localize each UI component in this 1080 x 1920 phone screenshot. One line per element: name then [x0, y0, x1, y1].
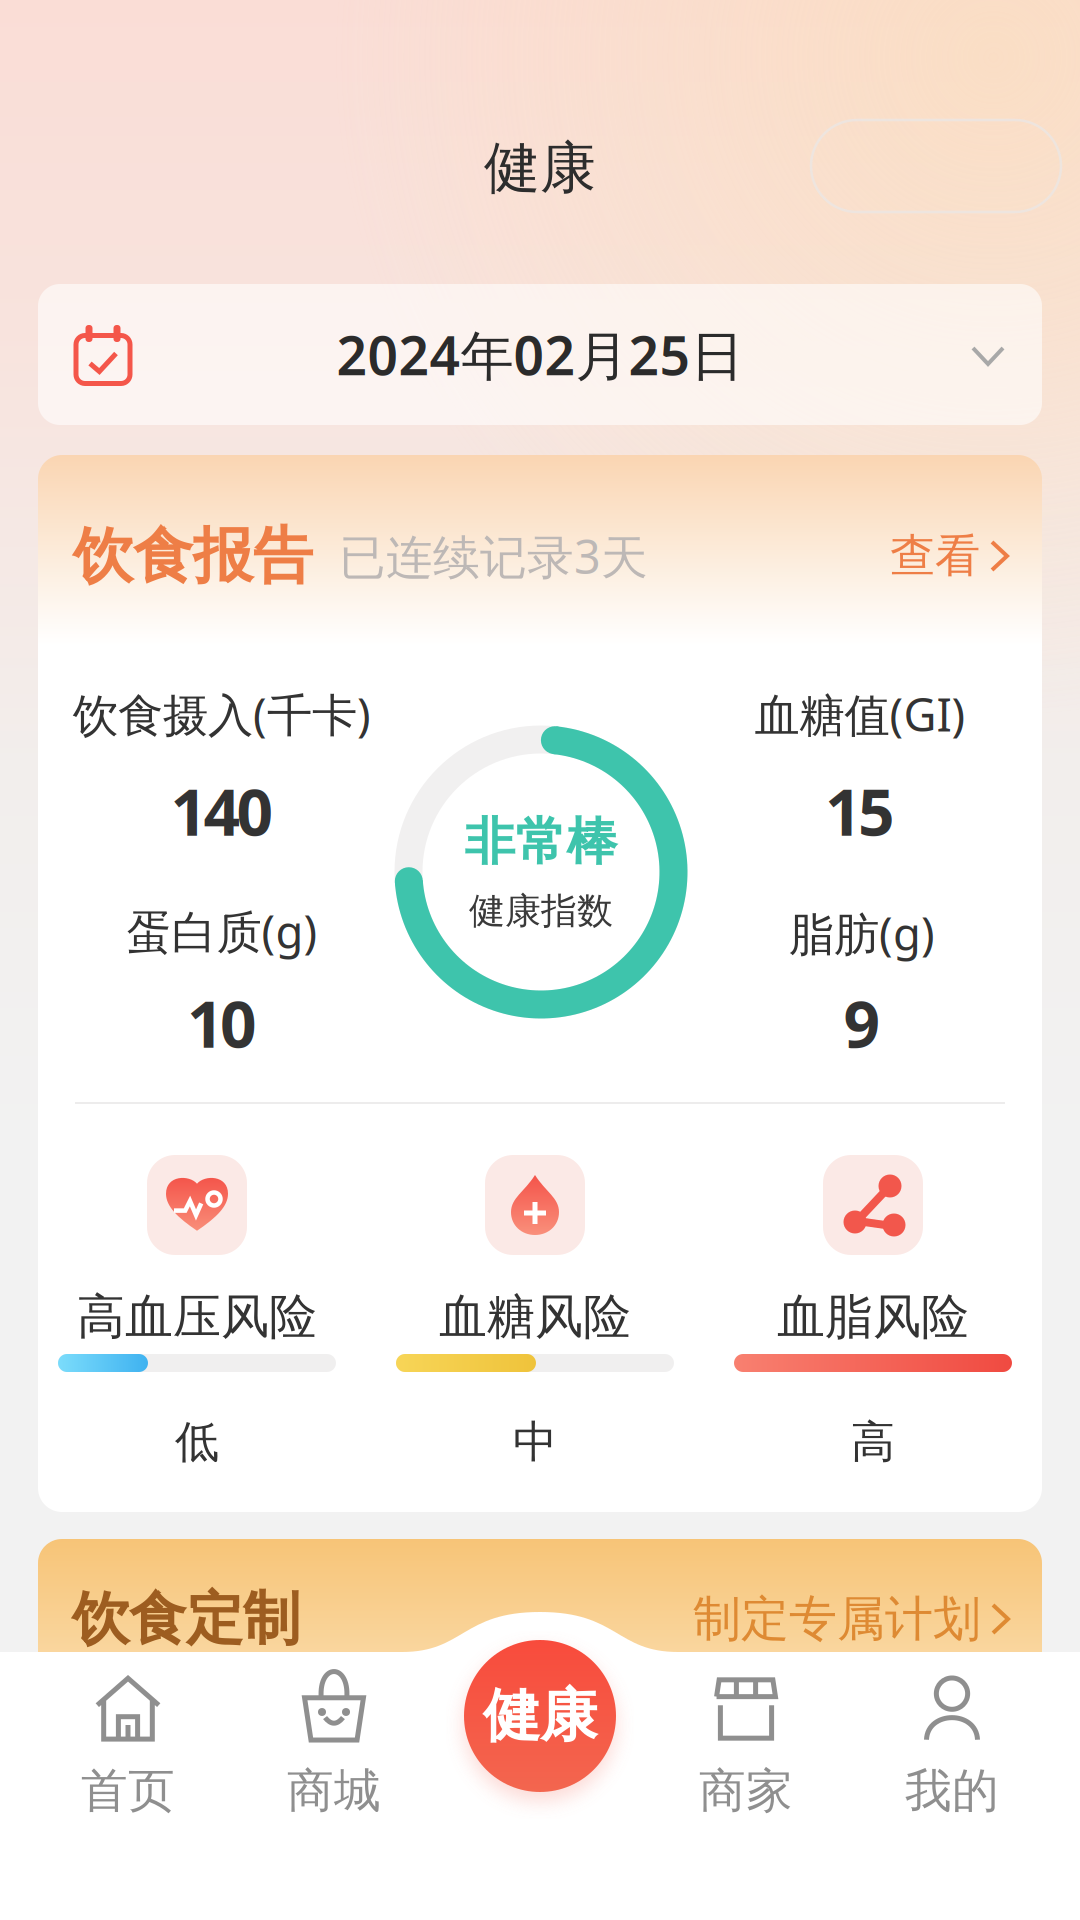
staticText: 9 [843, 980, 880, 1065]
staticText: 健康 [483, 1681, 597, 1751]
button[interactable]: 2024年02月25日 [38, 284, 1042, 425]
staticText: 已连续记录3天 [339, 525, 648, 587]
staticText: 高血压风险 [77, 1287, 317, 1346]
button[interactable]: 首页 [33, 1657, 223, 1837]
staticText: 140 [170, 768, 273, 853]
staticText: 蛋白质(g) [126, 901, 317, 961]
staticText: 血糖值(GI) [754, 684, 965, 744]
staticText: 血糖风险 [439, 1287, 631, 1346]
staticText: 血脂风险 [777, 1287, 969, 1346]
button[interactable]: 我的 [857, 1657, 1047, 1837]
staticText: 饮食报告 [73, 519, 313, 593]
button[interactable]: 更多 [811, 120, 1061, 212]
button[interactable]: 查看 [890, 528, 1007, 584]
button[interactable]: 健康 [464, 1640, 616, 1792]
staticText: 高 [851, 1415, 895, 1469]
staticText: 制定专属计划 [693, 1589, 981, 1648]
staticText: 查看 [890, 528, 980, 584]
staticText: 饮食摄入(千卡) [73, 684, 371, 744]
staticText: 低 [175, 1415, 219, 1469]
staticText: 脂肪(g) [789, 903, 935, 963]
staticText: 商城 [287, 1762, 381, 1820]
staticText: 健康 [484, 134, 596, 202]
staticText: 饮食定制 [72, 1584, 300, 1654]
button[interactable]: 商城 [239, 1657, 429, 1837]
staticText: 10 [187, 980, 257, 1065]
staticText: 中 [513, 1415, 557, 1469]
staticText: 健康指数 [469, 889, 613, 933]
staticText: 15 [825, 768, 895, 853]
staticText: 商家 [699, 1762, 793, 1820]
staticText: 非常棒 [464, 811, 617, 873]
button[interactable]: 商家 [651, 1657, 841, 1837]
staticText: 首页 [81, 1762, 175, 1820]
staticText: 我的 [905, 1762, 999, 1820]
staticText: 2024年02月25日 [336, 319, 743, 390]
button[interactable]: 饮食定制 [38, 1539, 1042, 1709]
